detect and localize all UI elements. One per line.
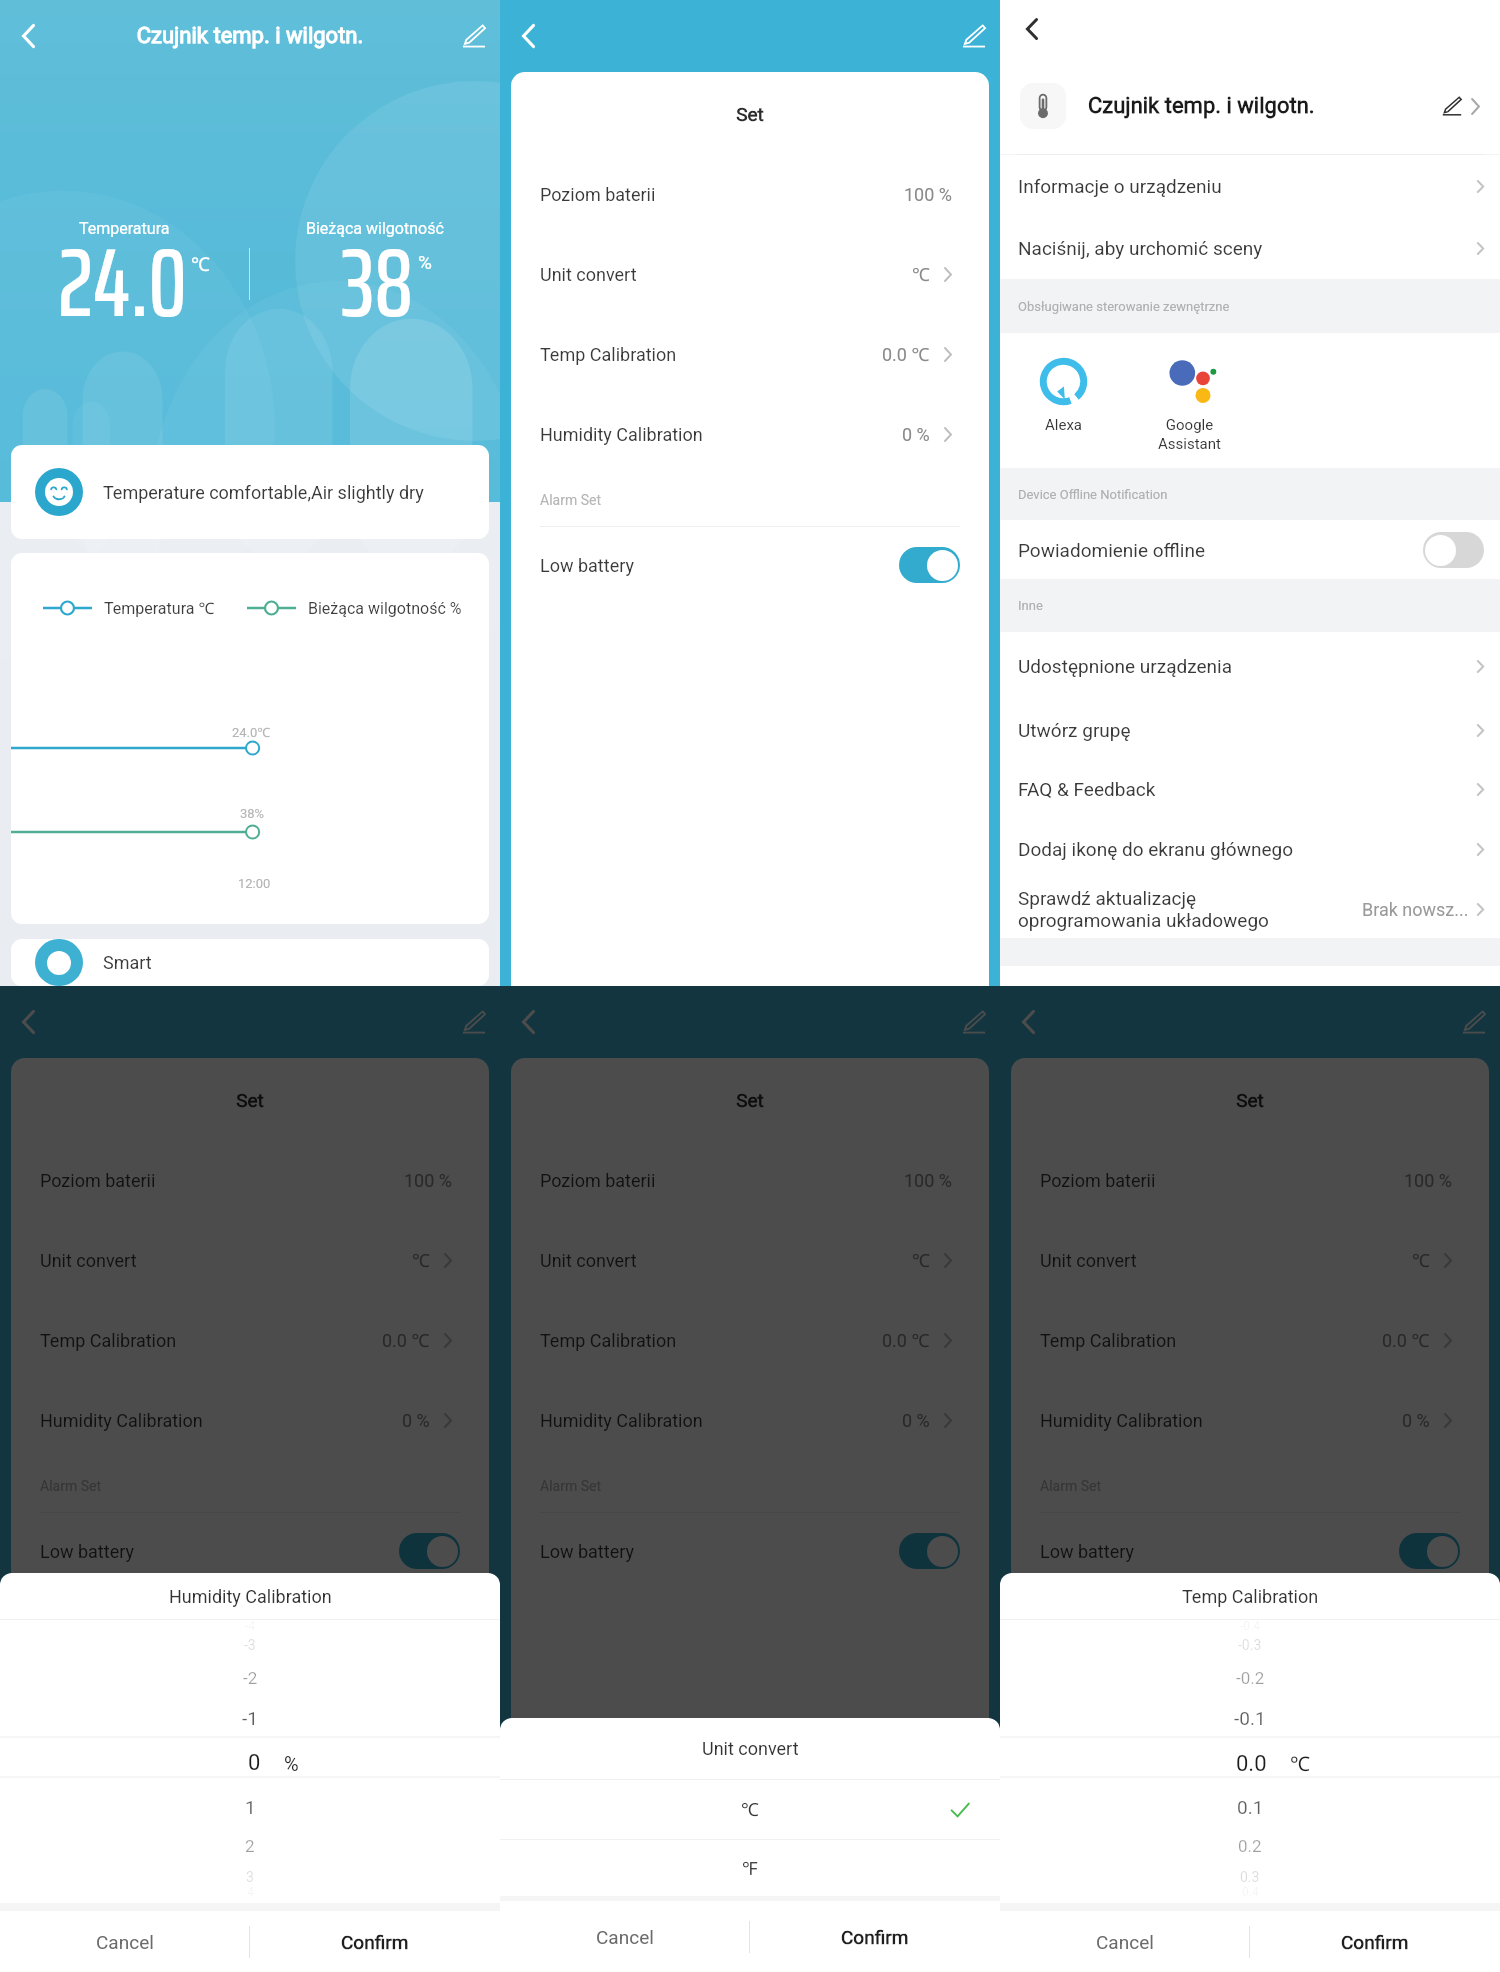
button[interactable]: Edit	[1452, 1000, 1496, 1044]
button[interactable]: Back	[506, 1000, 550, 1044]
button[interactable]: Cancel	[0, 1911, 249, 1972]
button[interactable]: Dodaj ikonę do ekranu głównego	[1000, 818, 1500, 880]
staticText: ℃	[412, 1248, 430, 1273]
staticText: 0.1	[1237, 1796, 1264, 1818]
button[interactable]: Back	[1006, 1000, 1050, 1044]
button[interactable]: Back	[6, 14, 50, 58]
button[interactable]: Temp Calibration	[511, 1300, 989, 1380]
button[interactable]: Turn on	[1423, 532, 1484, 568]
button[interactable]: Udostępnione urządzenia	[1000, 632, 1500, 700]
button[interactable]: Humidity Calibration	[11, 1380, 489, 1460]
button[interactable]: Low battery	[1011, 1513, 1489, 1589]
button[interactable]: Temp Calibration	[1011, 1300, 1489, 1380]
button[interactable]: Turn off	[899, 1533, 960, 1569]
staticText: -4	[245, 1619, 256, 1633]
button[interactable]: Unit convert	[1011, 1220, 1489, 1300]
staticText: %	[418, 251, 432, 273]
button[interactable]: Informacje o urządzeniu	[1000, 155, 1500, 217]
staticText: 0.0 ℃	[882, 342, 930, 367]
button[interactable]: Unit convert	[11, 1220, 489, 1300]
staticText: 100 %	[904, 1170, 952, 1191]
button[interactable]: Unit convert	[511, 234, 989, 314]
button[interactable]: Edit	[452, 1000, 496, 1044]
button[interactable]: Back	[1010, 7, 1054, 51]
staticText: Cancel	[596, 1926, 654, 1948]
button[interactable]: Temp Calibration	[511, 314, 989, 394]
button[interactable]: Google Assistant	[1144, 359, 1234, 453]
button[interactable]: Poziom baterii	[1011, 1140, 1489, 1220]
button[interactable]: Low battery	[11, 1513, 489, 1589]
staticText: Naciśnij, aby urchomić sceny	[1018, 237, 1263, 259]
button[interactable]: Rename	[1439, 93, 1465, 119]
staticText: Smart	[103, 952, 152, 973]
button[interactable]: Back	[6, 1000, 50, 1044]
button[interactable]: Poziom baterii	[511, 154, 989, 234]
button[interactable]: Poziom baterii	[511, 1140, 989, 1220]
button[interactable]: Confirm	[750, 1901, 1000, 1972]
staticText: Temperatura ℃	[104, 597, 215, 619]
button[interactable]: Utwórz grupę	[1000, 700, 1500, 760]
staticText: Unit convert	[702, 1738, 799, 1759]
staticText: Temp Calibration	[1182, 1586, 1319, 1607]
staticText: Set	[511, 103, 989, 125]
button[interactable]: Temp Calibration	[11, 1300, 489, 1380]
staticText: 12:00	[238, 876, 271, 891]
staticText: Obsługiwane sterowanie zewnętrzne	[1018, 299, 1230, 314]
staticText: Set	[511, 1089, 989, 1111]
button[interactable]: Sprawdź aktualizację oprogramowania ukła…	[1000, 880, 1500, 938]
staticText: Confirm	[841, 1926, 909, 1948]
button[interactable]: Turn off	[399, 1533, 460, 1569]
staticText: Poziom baterii	[540, 184, 656, 205]
staticText: Brak nowsz...	[1362, 899, 1469, 920]
button[interactable]: Turn off	[1399, 1533, 1460, 1569]
button[interactable]: Low battery	[511, 527, 989, 603]
button[interactable]: Turn off	[899, 547, 960, 583]
staticText: FAQ & Feedback	[1018, 778, 1156, 800]
button[interactable]: Edit	[952, 1000, 996, 1044]
button[interactable]: Humidity Calibration	[511, 394, 989, 474]
button[interactable]: FAQ & Feedback	[1000, 760, 1500, 818]
button[interactable]: Cancel	[1000, 1911, 1249, 1972]
staticText: Set	[1011, 1089, 1489, 1111]
staticText: %	[284, 1752, 299, 1775]
staticText: 1	[245, 1796, 256, 1818]
staticText: 24.0℃	[232, 723, 271, 741]
button[interactable]: Powiadomienie offline	[1000, 520, 1500, 579]
button[interactable]: Alexa	[1018, 359, 1108, 434]
button[interactable]: Humidity Calibration	[511, 1380, 989, 1460]
button[interactable]: Cancel	[500, 1901, 749, 1972]
staticText: Humidity Calibration	[169, 1586, 332, 1607]
button[interactable]: ℉	[500, 1840, 1000, 1896]
staticText: Low battery	[1040, 1541, 1134, 1562]
staticText: 38	[341, 207, 414, 358]
staticText: -2	[243, 1668, 258, 1688]
button[interactable]: Smart	[11, 939, 489, 986]
staticText: ℃	[1412, 1248, 1430, 1273]
button[interactable]: Naciśnij, aby urchomić sceny	[1000, 217, 1500, 279]
button[interactable]: Low battery	[511, 1513, 989, 1589]
staticText: Cancel	[1096, 1931, 1154, 1953]
button[interactable]: Back	[506, 14, 550, 58]
button[interactable]: Humidity Calibration	[1011, 1380, 1489, 1460]
button[interactable]: Edit	[452, 14, 496, 58]
button[interactable]: Czujnik temp. i wilgotn.	[1000, 58, 1500, 154]
staticText: Udostępnione urządzenia	[1018, 655, 1233, 677]
staticText: Temp Calibration	[540, 344, 677, 365]
staticText: -0.2	[1236, 1668, 1265, 1688]
button[interactable]: Temperature comfortable,Air slightly dry	[11, 445, 489, 539]
button[interactable]: Confirm	[1250, 1911, 1500, 1972]
staticText: Humidity Calibration	[40, 1410, 203, 1431]
button[interactable]: Unit convert	[511, 1220, 989, 1300]
staticText: Low battery	[540, 1541, 634, 1562]
button[interactable]: Confirm	[250, 1911, 500, 1972]
staticText: 0.0 ℃	[382, 1328, 430, 1353]
button[interactable]: Poziom baterii	[11, 1140, 489, 1220]
staticText: 0.2	[1238, 1836, 1262, 1856]
staticText: 0 %	[402, 1410, 430, 1431]
button[interactable]: Edit	[952, 14, 996, 58]
staticText: Alarm Set	[540, 492, 601, 508]
button[interactable]: ℃	[500, 1780, 1000, 1839]
staticText: Device Offline Notification	[1018, 487, 1168, 502]
staticText: Low battery	[540, 555, 634, 576]
staticText: Humidity Calibration	[540, 424, 703, 445]
